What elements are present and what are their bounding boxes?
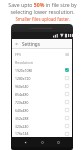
staticText: 854x480 (15, 92, 29, 97)
staticText: 320x240 (15, 124, 29, 129)
staticText: Settings (22, 41, 40, 47)
button[interactable]: 960x540 (12, 82, 72, 90)
staticText: Smaller files upload faster. (15, 16, 70, 22)
button[interactable]: 720x480 (12, 98, 72, 106)
staticText: selecting lower resolution. (10, 8, 75, 15)
staticText: 1920x1080 (15, 68, 33, 73)
staticText: 960x540 (15, 84, 29, 89)
staticText: Resolution (15, 60, 33, 65)
staticText: 720x480 (15, 100, 29, 105)
staticText: 352x288 (15, 116, 29, 121)
button[interactable]: Back (14, 41, 20, 47)
button[interactable]: 640x480 (12, 106, 72, 114)
button[interactable]: 176x144 (12, 130, 72, 137)
button[interactable]: 1280x720 (12, 74, 72, 82)
staticText: 176x144 (15, 131, 29, 136)
button[interactable]: 320x240 (12, 122, 72, 130)
staticText: 640x480 (15, 108, 29, 113)
staticText: FPS (15, 52, 22, 57)
button[interactable]: 352x288 (12, 114, 72, 122)
staticText: Save upto 50% in file size by (8, 1, 77, 8)
button[interactable]: Back (22, 139, 29, 146)
button[interactable]: Recent apps (55, 139, 62, 146)
button[interactable]: FPS (12, 49, 72, 59)
staticText: 1280x720 (15, 76, 31, 81)
button[interactable]: Home (39, 139, 46, 146)
button[interactable]: 854x480 (12, 90, 72, 98)
staticText: 30 (65, 52, 69, 57)
button[interactable]: 1920x1080 (12, 66, 72, 74)
